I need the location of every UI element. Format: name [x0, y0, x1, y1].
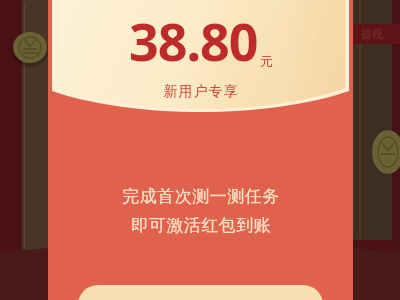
staticText: 完成首次测一测任务: [122, 186, 280, 207]
staticText: 元: [260, 53, 273, 69]
staticText: 提现: [361, 27, 383, 41]
button[interactable]: 立即领取红包: [78, 285, 323, 300]
staticText: 38.80: [129, 5, 258, 76]
staticText: 新用户专享: [163, 83, 238, 101]
button[interactable]: 提现: [344, 24, 400, 44]
staticText: 即可激活红包到账: [131, 215, 271, 236]
